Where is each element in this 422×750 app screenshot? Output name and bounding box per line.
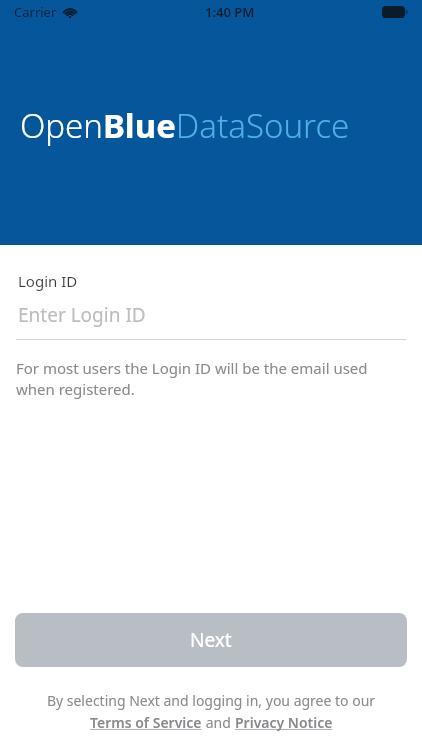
staticText: OpenBlueDataSource — [20, 103, 350, 148]
staticText: Login ID — [18, 271, 78, 291]
staticText: By selecting Next and logging in, you ag… — [0, 691, 422, 710]
staticText: Enter Login ID — [18, 302, 146, 328]
staticText: Next — [190, 627, 232, 653]
button[interactable]: Enter Login ID — [16, 302, 406, 340]
staticText: For most users the Login ID will be the … — [16, 358, 406, 400]
button[interactable]: Next — [15, 613, 407, 667]
button[interactable]: Terms of Service — [90, 713, 202, 732]
button[interactable]: Privacy Notice — [235, 713, 333, 732]
staticText: 1:40 PM — [205, 3, 255, 21]
other: Battery full — [382, 6, 408, 18]
other: Wi-Fi signal — [62, 6, 78, 18]
staticText: Carrier — [14, 3, 57, 21]
staticText: and — [202, 713, 235, 732]
